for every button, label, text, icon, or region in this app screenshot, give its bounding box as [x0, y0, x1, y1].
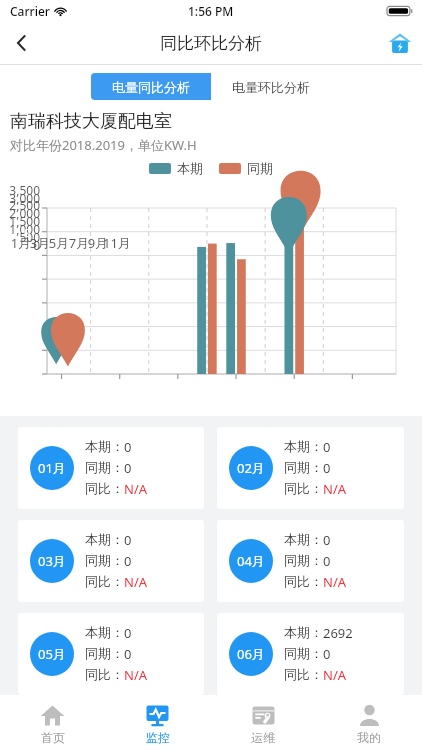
button[interactable]: 电量同比分析: [91, 73, 210, 100]
staticText: 05月: [38, 645, 66, 663]
staticText: 2692: [323, 624, 353, 642]
button[interactable]: 运维: [210, 698, 316, 750]
staticText: 0: [323, 552, 331, 570]
staticText: 同期：: [284, 645, 323, 661]
button[interactable]: Back: [0, 22, 44, 64]
staticText: 同期：: [85, 645, 124, 661]
button[interactable]: 06月: [217, 613, 404, 695]
button[interactable]: 02月: [217, 427, 404, 509]
staticText: 同期：: [85, 459, 124, 475]
button[interactable]: Home: [378, 22, 422, 64]
staticText: 我的: [357, 730, 381, 745]
staticText: 02月: [237, 459, 265, 477]
staticText: 同期: [247, 160, 273, 176]
staticText: 3,500: [0, 182, 40, 198]
staticText: 04月: [237, 552, 265, 570]
staticText: 同比：: [284, 573, 323, 589]
staticText: 同比：: [85, 480, 124, 496]
staticText: 监控: [146, 730, 170, 745]
staticText: 0: [124, 552, 132, 570]
staticText: 同期：: [284, 459, 323, 475]
staticText: 0: [124, 438, 132, 456]
button[interactable]: 监控: [105, 698, 210, 750]
staticText: 06月: [237, 645, 265, 663]
staticText: N/A: [323, 480, 347, 498]
staticText: 3,000: [0, 190, 40, 206]
staticText: 对比年份2018.2019，单位KW.H: [10, 136, 197, 154]
staticText: 2,000: [0, 205, 40, 221]
staticText: 同比：: [284, 480, 323, 496]
staticText: 电量环比分析: [232, 79, 310, 95]
staticText: 1月: [4, 234, 38, 252]
staticText: 本期：: [85, 624, 124, 640]
staticText: 0: [323, 645, 331, 663]
staticText: 0: [323, 438, 331, 456]
staticText: 南瑞科技大厦配电室: [10, 110, 172, 133]
staticText: N/A: [124, 573, 148, 591]
button[interactable]: 电量环比分析: [211, 73, 331, 100]
staticText: 本期：: [85, 438, 124, 454]
staticText: 本期：: [284, 624, 323, 640]
staticText: 9月: [81, 234, 115, 252]
button[interactable]: 首页: [0, 698, 105, 750]
staticText: 运维: [251, 730, 275, 745]
staticText: 5月: [42, 234, 76, 252]
staticText: 2,500: [0, 197, 40, 213]
staticText: 01月: [38, 459, 66, 477]
button[interactable]: 我的: [316, 698, 422, 750]
staticText: 03月: [38, 552, 66, 570]
staticText: 同期：: [284, 552, 323, 568]
staticText: N/A: [124, 480, 148, 498]
staticText: 同比：: [85, 666, 124, 682]
staticText: 同比：: [85, 573, 124, 589]
staticText: N/A: [323, 573, 347, 591]
button[interactable]: 04月: [217, 520, 404, 602]
staticText: 3月: [23, 234, 57, 252]
staticText: 同比：: [284, 666, 323, 682]
staticText: 本期：: [85, 531, 124, 547]
staticText: 11月: [100, 234, 134, 252]
staticText: 0: [0, 237, 40, 253]
staticText: 0: [124, 645, 132, 663]
staticText: N/A: [323, 666, 347, 684]
button[interactable]: 03月: [18, 520, 204, 602]
staticText: 1:56 PM: [188, 3, 234, 19]
staticText: 0: [24, 225, 31, 240]
staticText: 1,500: [0, 213, 40, 229]
staticText: 0: [124, 531, 132, 549]
staticText: N/A: [124, 666, 148, 684]
staticText: 0: [124, 459, 132, 477]
staticText: 500: [0, 229, 40, 245]
staticText: Carrier: [10, 3, 50, 19]
staticText: 本期：: [284, 531, 323, 547]
staticText: 7月: [62, 234, 96, 252]
staticText: 电量同比分析: [112, 79, 190, 95]
staticText: 同比环比分析: [160, 33, 262, 54]
staticText: 本期: [177, 160, 203, 176]
staticText: 0: [323, 531, 331, 549]
button[interactable]: 01月: [18, 427, 204, 509]
staticText: 1,000: [0, 221, 40, 237]
staticText: 本期：: [284, 438, 323, 454]
button[interactable]: 05月: [18, 613, 204, 695]
staticText: 同期：: [85, 552, 124, 568]
staticText: 0: [323, 459, 331, 477]
staticText: 首页: [41, 730, 65, 745]
staticText: 0: [124, 624, 132, 642]
